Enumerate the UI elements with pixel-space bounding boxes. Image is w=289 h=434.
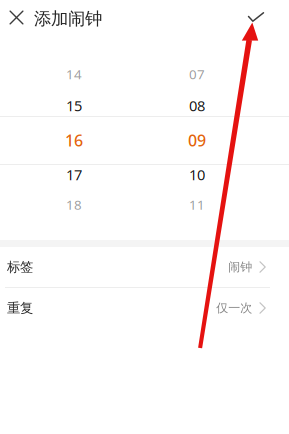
button[interactable]: Done <box>237 0 275 35</box>
staticText: 08 <box>189 96 205 115</box>
staticText: 11 <box>189 196 205 213</box>
staticText: 09 <box>188 130 206 151</box>
button[interactable]: Close <box>0 0 34 35</box>
staticText: 15 <box>66 96 82 115</box>
staticText: 重复 <box>7 300 33 316</box>
staticText: 闹钟 <box>228 260 252 274</box>
staticText: 16 <box>65 130 83 151</box>
staticText: 仅一次 <box>216 301 252 315</box>
staticText: 标签 <box>7 259 33 275</box>
staticText: 18 <box>66 196 82 213</box>
staticText: 10 <box>189 165 205 184</box>
staticText: 添加闹钟 <box>34 8 102 29</box>
button[interactable]: 重复 <box>0 288 289 328</box>
staticText: 14 <box>66 65 82 83</box>
staticText: 07 <box>189 65 205 83</box>
button[interactable]: 标签 <box>0 247 289 287</box>
staticText: 17 <box>66 165 82 184</box>
